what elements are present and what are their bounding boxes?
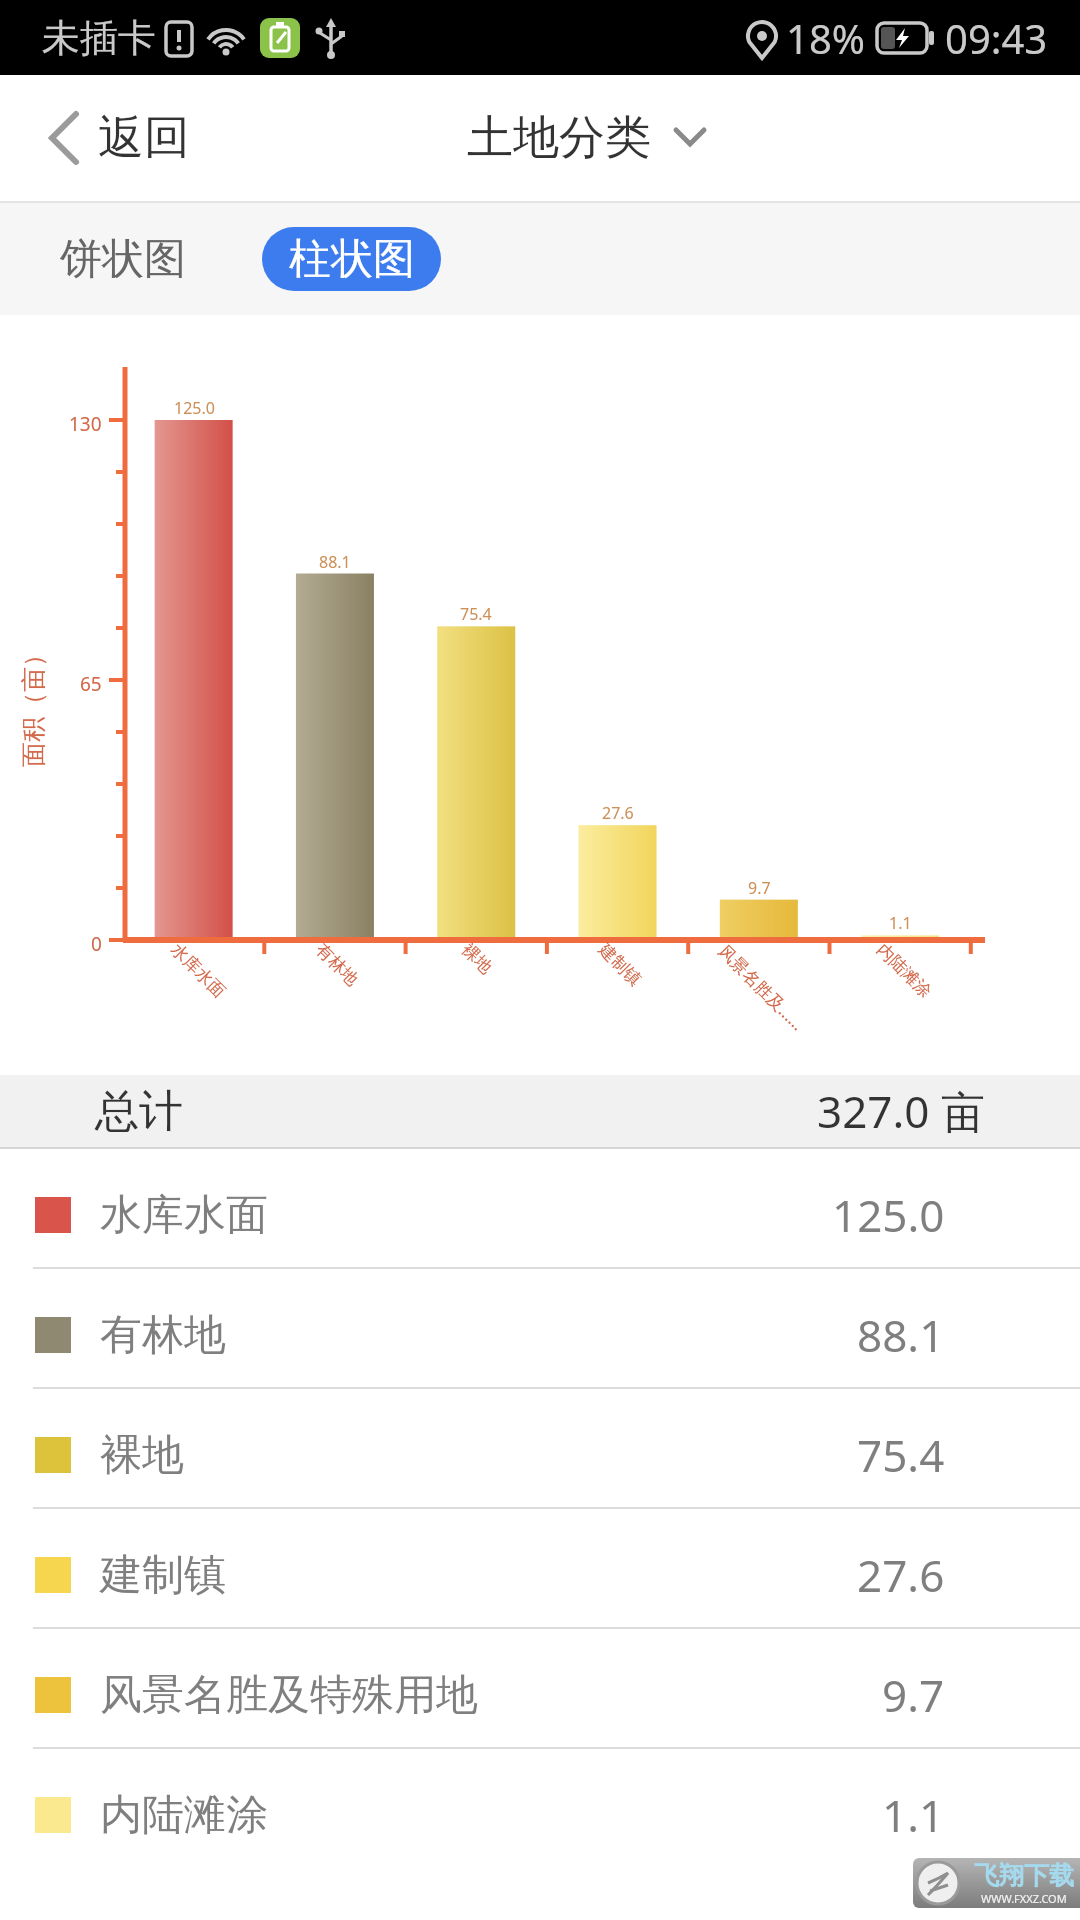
staticText: 75.4 <box>460 603 492 625</box>
staticText: 0 <box>91 931 102 957</box>
staticText: 09:43 <box>945 11 1048 65</box>
staticText: 总计 <box>95 1084 183 1139</box>
staticText: 9.7 <box>748 877 771 899</box>
staticText: 未插卡 <box>42 14 156 62</box>
button[interactable]: 内陆滩涂 <box>0 1749 1080 1867</box>
staticText: 内陆滩涂 <box>100 1789 268 1842</box>
button[interactable]: 总计 <box>0 1075 1080 1147</box>
button[interactable]: 水库水面 <box>0 1149 1080 1267</box>
button[interactable]: 土地分类 <box>467 109 707 167</box>
staticText: 风景名胜及...... <box>714 939 810 1036</box>
staticText: 27.6 <box>602 802 634 824</box>
button[interactable]: 风景名胜及特殊用地 <box>0 1629 1080 1747</box>
staticText: 327.0 亩 <box>817 1081 985 1141</box>
staticText: 返回 <box>98 109 190 167</box>
staticText: 裸地 <box>100 1429 184 1482</box>
staticText: 1.1 <box>882 1785 945 1845</box>
staticText: 有林地 <box>312 939 362 990</box>
button[interactable]: 建制镇 <box>0 1509 1080 1627</box>
staticText: 面积（亩） <box>18 642 49 767</box>
staticText: 125.0 <box>174 397 215 419</box>
button[interactable]: 裸地 <box>0 1389 1080 1507</box>
button[interactable]: 柱状图 <box>262 227 441 291</box>
staticText: 有林地 <box>100 1309 226 1362</box>
staticText: 土地分类 <box>467 109 651 167</box>
staticText: 88.1 <box>319 551 351 573</box>
staticText: 88.1 <box>857 1305 945 1365</box>
staticText: 建制镇 <box>595 939 645 990</box>
staticText: 1.1 <box>889 912 912 934</box>
staticText: 飞翔下载 <box>974 1860 1074 1891</box>
button[interactable]: 饼状图 <box>60 233 186 286</box>
staticText: 65 <box>80 671 102 697</box>
staticText: 水库水面 <box>100 1189 268 1242</box>
staticText: 内陆滩涂 <box>873 939 935 1002</box>
staticText: 柱状图 <box>289 233 415 286</box>
staticText: 27.6 <box>857 1545 945 1605</box>
staticText: 9.7 <box>882 1665 945 1725</box>
staticText: 75.4 <box>857 1425 945 1485</box>
staticText: 风景名胜及特殊用地 <box>100 1669 478 1722</box>
staticText: WWW.FXXZ.COM <box>981 1891 1067 1906</box>
button[interactable]: 返回 <box>46 109 190 167</box>
staticText: 125.0 <box>832 1185 945 1245</box>
button[interactable]: 有林地 <box>0 1269 1080 1387</box>
staticText: 裸地 <box>458 939 496 978</box>
staticText: 建制镇 <box>100 1549 226 1602</box>
staticText: 130 <box>69 411 102 437</box>
staticText: 饼状图 <box>60 233 186 286</box>
staticText: 18% <box>786 11 865 65</box>
staticText: 水库水面 <box>167 939 229 1002</box>
